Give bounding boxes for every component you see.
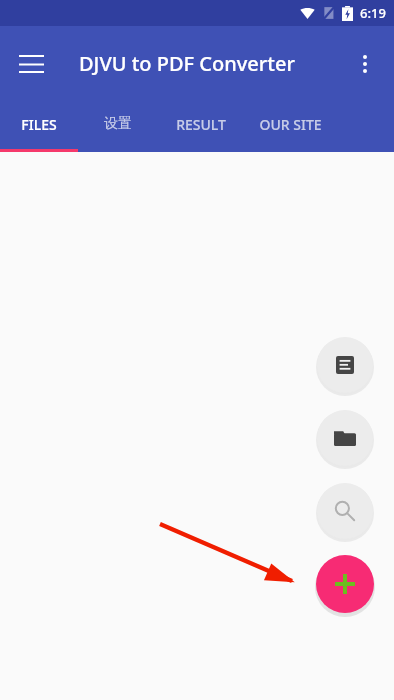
button[interactable]: 设置 [78, 101, 158, 152]
staticText: 6:19 [360, 4, 386, 22]
staticText: OUR SITE [259, 115, 322, 134]
button[interactable]: Add file [316, 555, 374, 613]
staticText: 设置 [104, 115, 132, 133]
staticText: RESULT [176, 115, 226, 134]
button[interactable]: More options [342, 41, 388, 87]
staticText: DJVU to PDF Converter [79, 50, 295, 77]
button[interactable]: OUR SITE [243, 101, 338, 152]
button[interactable]: Browse folders [317, 410, 373, 466]
button[interactable]: FILES [0, 101, 78, 152]
button[interactable]: Search [317, 483, 373, 539]
button[interactable]: Documents [317, 337, 373, 393]
button[interactable]: RESULT [158, 101, 243, 152]
button[interactable]: Open navigation menu [8, 41, 54, 87]
staticText: FILES [21, 115, 57, 134]
